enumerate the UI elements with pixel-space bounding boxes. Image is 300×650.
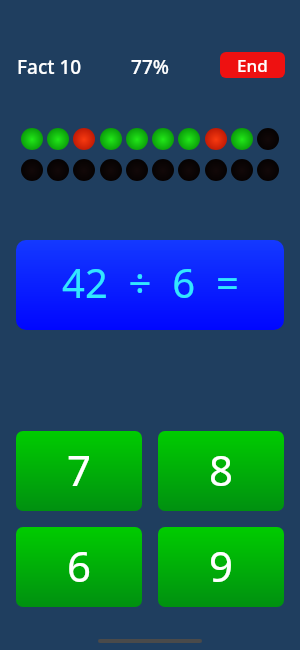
button[interactable]: 8 — [158, 431, 284, 511]
button[interactable]: 7 — [16, 431, 142, 511]
staticText: 6 — [67, 537, 92, 594]
staticText: 77% — [131, 54, 169, 80]
button[interactable]: Fact 10 — [17, 54, 82, 80]
button[interactable]: 6 — [16, 527, 142, 607]
staticText: 42 ÷ 6 = — [62, 255, 239, 309]
staticText: End — [237, 54, 268, 77]
staticText: 8 — [209, 441, 234, 498]
button[interactable]: 9 — [158, 527, 284, 607]
staticText: 9 — [209, 537, 234, 594]
staticText: 7 — [67, 441, 92, 498]
button[interactable]: 42 ÷ 6 = — [16, 240, 284, 330]
button[interactable]: End — [220, 52, 285, 78]
